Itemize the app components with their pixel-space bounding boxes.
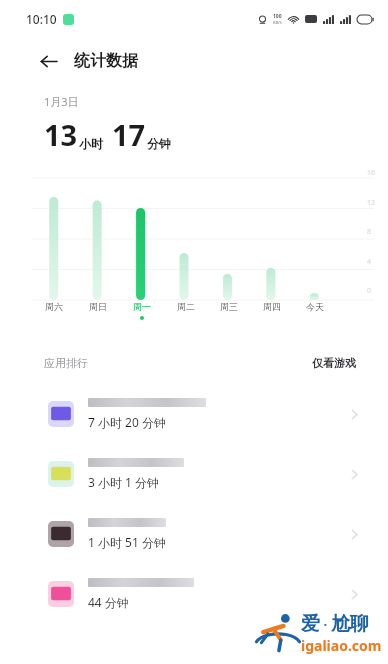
staticText: 尬聊 [331,612,369,636]
button[interactable]: 3 小时 1 分钟 [0,444,388,504]
staticText: 周三 [220,301,238,312]
staticText: 100 [273,13,282,20]
staticText: 爱 [301,612,320,636]
staticText: 周六 [45,301,63,312]
staticText: 10:10 [26,11,57,27]
button[interactable]: 44 分钟 [0,564,388,624]
staticText: igaliao.com [301,636,382,655]
staticText: 0 [367,286,372,296]
staticText: 周日 [89,301,107,312]
staticText: 12 [367,198,376,208]
staticText: 8 [367,227,372,237]
staticText: 统计数据 [74,51,138,71]
staticText: KB/S [273,20,282,25]
staticText: 7 小时 20 分钟 [88,414,166,430]
button[interactable]: 1 小时 51 分钟 [0,504,388,564]
staticText: 小时 [79,136,103,151]
staticText: 3 小时 1 分钟 [88,474,160,490]
staticText: 1月3日 [44,94,79,109]
staticText: 13 [44,115,78,154]
staticText: 今天 [306,301,324,312]
staticText: 周四 [263,301,281,312]
staticText: 17 [112,115,146,154]
staticText: 4 [367,257,372,267]
button[interactable]: 返回 [34,47,62,75]
staticText: 1 小时 51 分钟 [88,534,166,550]
staticText: 仅看游戏 [312,356,356,370]
staticText: 16 [367,168,376,178]
staticText: 分钟 [147,136,171,151]
staticText: 应用排行 [44,356,88,370]
button[interactable]: 仅看游戏 [308,352,360,374]
staticText: 周二 [177,301,195,312]
staticText: 周一 [133,301,151,312]
staticText: · [320,615,331,633]
staticText: 44 分钟 [88,594,129,610]
button[interactable]: 7 小时 20 分钟 [0,384,388,444]
